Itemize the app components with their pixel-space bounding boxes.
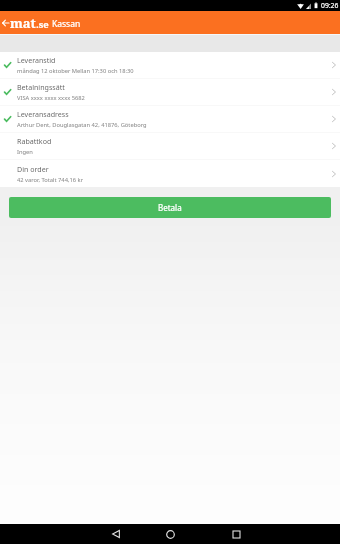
- button[interactable]: Back: [106, 524, 126, 544]
- staticText: måndag 12 oktober Mellan 17:30 och 18:30: [17, 67, 134, 75]
- staticText: Betala: [158, 202, 182, 213]
- staticText: Kassan: [52, 18, 81, 30]
- button[interactable]: Leveransadress: [0, 106, 340, 133]
- button[interactable]: Din order: [0, 160, 340, 187]
- staticText: Rabattkod: [17, 136, 52, 146]
- staticText: 42 varor, Totalt 744,16 kr: [17, 176, 84, 184]
- staticText: Leveransadress: [17, 109, 69, 119]
- staticText: Arthur Dent, Douglasgatan 42, 41876, Göt…: [17, 121, 147, 129]
- staticText: Ingen: [17, 148, 33, 156]
- button[interactable]: Rabattkod: [0, 133, 340, 160]
- staticText: 09:26: [321, 1, 339, 10]
- staticText: .se: [36, 18, 49, 31]
- button[interactable]: Recent apps: [226, 524, 246, 544]
- staticText: Din order: [17, 164, 49, 174]
- staticText: mat: [10, 14, 36, 32]
- button[interactable]: Betala: [9, 197, 331, 218]
- button[interactable]: Betalningssätt: [0, 79, 340, 106]
- staticText: Leveranstid: [17, 55, 56, 65]
- staticText: Betalningssätt: [17, 82, 65, 92]
- button[interactable]: Home: [160, 524, 180, 544]
- button[interactable]: Back: [0, 11, 10, 34]
- button[interactable]: Leveranstid: [0, 52, 340, 79]
- staticText: VISA xxxx xxxx xxxx 5682: [17, 94, 85, 102]
